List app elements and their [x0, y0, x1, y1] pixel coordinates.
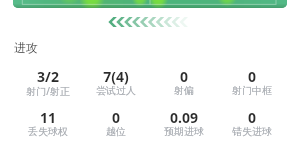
staticText: 0	[150, 67, 218, 86]
button[interactable]: 7(4)	[82, 0, 150, 150]
staticText: 7(4)	[82, 67, 150, 86]
button[interactable]: 11	[14, 0, 82, 150]
button[interactable]: 3/2	[14, 0, 82, 150]
staticText: 3/2	[14, 67, 82, 86]
staticText: 丢失球权	[14, 125, 82, 138]
staticText: 尝试过人	[82, 84, 150, 97]
staticText: 0	[218, 67, 286, 86]
button[interactable]: 0	[82, 0, 150, 150]
staticText: 进攻	[14, 40, 38, 55]
staticText: 射门/射正	[14, 84, 82, 98]
staticText: 射门中框	[218, 84, 286, 97]
button[interactable]: 0	[218, 0, 286, 150]
button[interactable]	[13, 0, 287, 8]
staticText: 越位	[82, 125, 150, 138]
button[interactable]: 0	[150, 0, 218, 150]
staticText: 0.09	[150, 108, 218, 127]
staticText: 射偏	[150, 84, 218, 97]
staticText: 11	[14, 108, 82, 127]
button[interactable]: 0	[218, 0, 286, 150]
staticText: 0	[82, 108, 150, 127]
staticText: 0	[218, 108, 286, 127]
staticText: 错失进球	[218, 125, 286, 138]
button[interactable]: 0.09	[150, 0, 218, 150]
staticText: 预期进球	[150, 125, 218, 138]
